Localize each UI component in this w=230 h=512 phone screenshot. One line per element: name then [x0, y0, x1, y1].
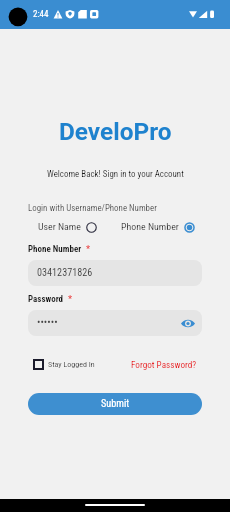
staticText: * [68, 294, 73, 305]
staticText: * [86, 244, 91, 255]
button[interactable]: Forgot Password? [131, 359, 197, 370]
staticText: Welcome Back! Sign in to your Account [47, 169, 184, 179]
staticText: DeveloPro [59, 117, 172, 146]
button[interactable]: Phone Number [121, 221, 195, 233]
button[interactable]: Stay Logged In [33, 359, 95, 370]
staticText: 03412371826 [37, 267, 93, 279]
button[interactable]: Submit [28, 393, 202, 415]
other: Show password [181, 319, 195, 328]
staticText: Login with Username/Phone Number [28, 203, 157, 213]
button[interactable]: 03412371826 [28, 260, 202, 286]
staticText: 2:44 [33, 9, 49, 20]
staticText: Stay Logged In [48, 360, 95, 369]
button[interactable]: User Name [38, 221, 97, 233]
staticText: •••••• [37, 317, 58, 329]
staticText: Password [28, 294, 64, 305]
button[interactable]: •••••• [28, 310, 202, 336]
staticText: Phone Number [28, 244, 82, 255]
staticText: Submit [101, 398, 130, 410]
staticText: User Name [38, 221, 81, 233]
staticText: Phone Number [121, 221, 179, 233]
